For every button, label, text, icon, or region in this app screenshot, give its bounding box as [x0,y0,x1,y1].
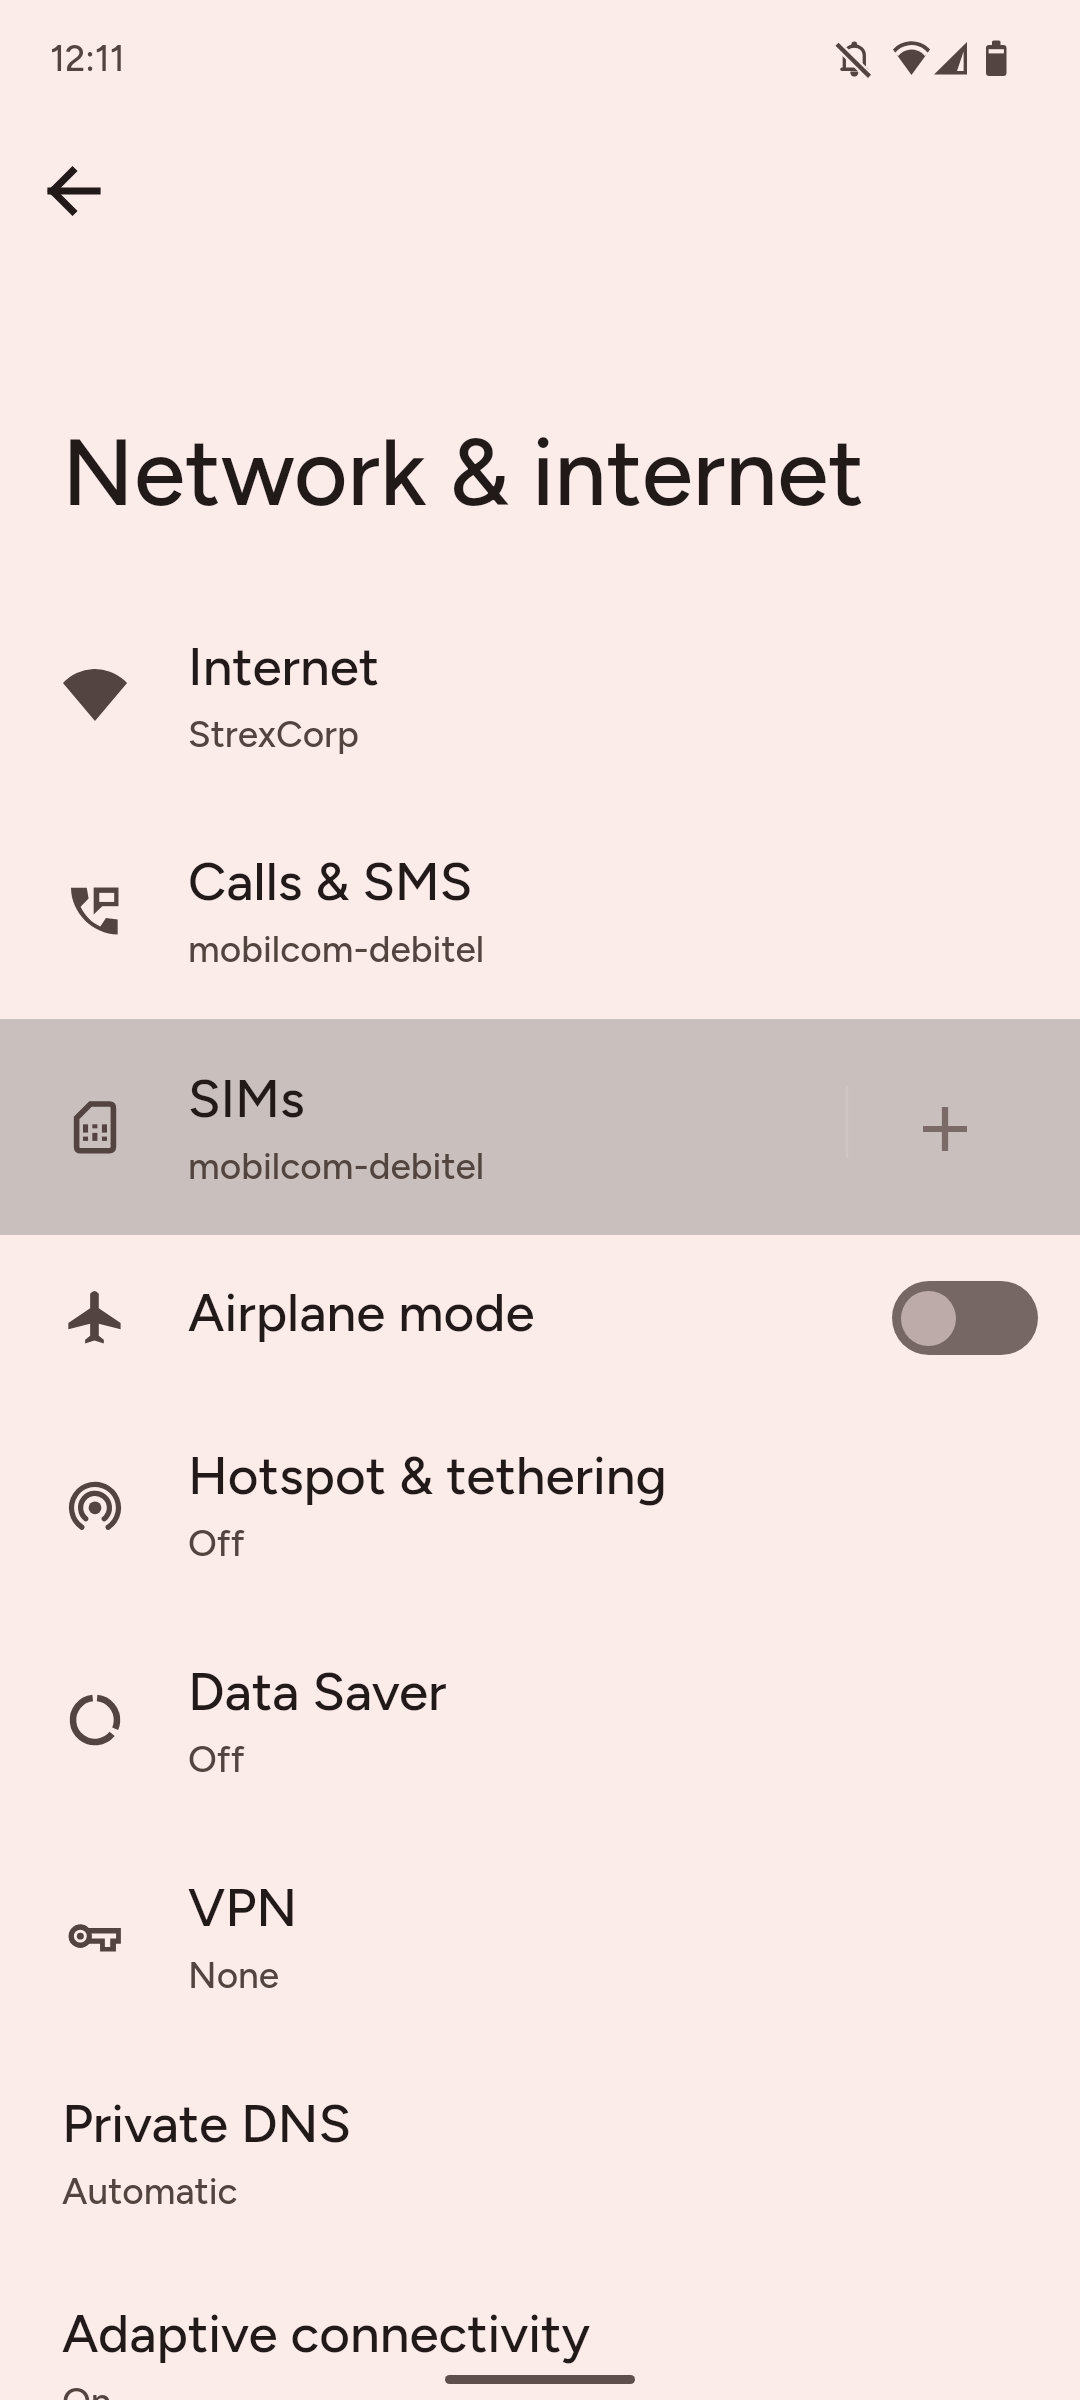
button[interactable] [0,595,1080,811]
staticText: mobilcom-debitel [188,927,485,971]
button[interactable] [0,1398,1080,1614]
button[interactable]: Navigate up [24,141,124,241]
staticText: 12:11 [50,37,125,80]
staticText: Data Saver [188,1660,447,1724]
staticText: Automatic [62,2169,238,2213]
button[interactable] [0,1235,1080,1398]
staticText: Off [188,1737,245,1781]
staticText: None [188,1953,280,1997]
staticText: Network & internet [62,417,865,529]
staticText: StrexCorp [188,712,359,756]
staticText: Private DNS [62,2092,352,2156]
staticText: mobilcom-debitel [188,1144,485,1188]
button[interactable] [0,1830,1080,2046]
staticText: VPN [188,1876,298,1940]
staticText: Calls & SMS [188,850,473,914]
button[interactable] [0,811,1080,1019]
button[interactable] [0,2046,1080,2262]
button[interactable] [0,1614,1080,1830]
staticText: SIMs [188,1067,305,1131]
staticText: On [62,2379,112,2400]
button[interactable] [0,1019,1080,1235]
staticText: Hotspot & tethering [188,1444,667,1508]
staticText: Off [188,1521,245,1565]
button[interactable]: Airplane mode [830,1235,1080,1398]
staticText: Airplane mode [188,1281,535,1345]
button[interactable] [0,2262,1080,2400]
button[interactable]: Add SIM [857,1021,1033,1237]
staticText: Internet [188,635,380,699]
staticText: Adaptive connectivity [62,2302,590,2366]
